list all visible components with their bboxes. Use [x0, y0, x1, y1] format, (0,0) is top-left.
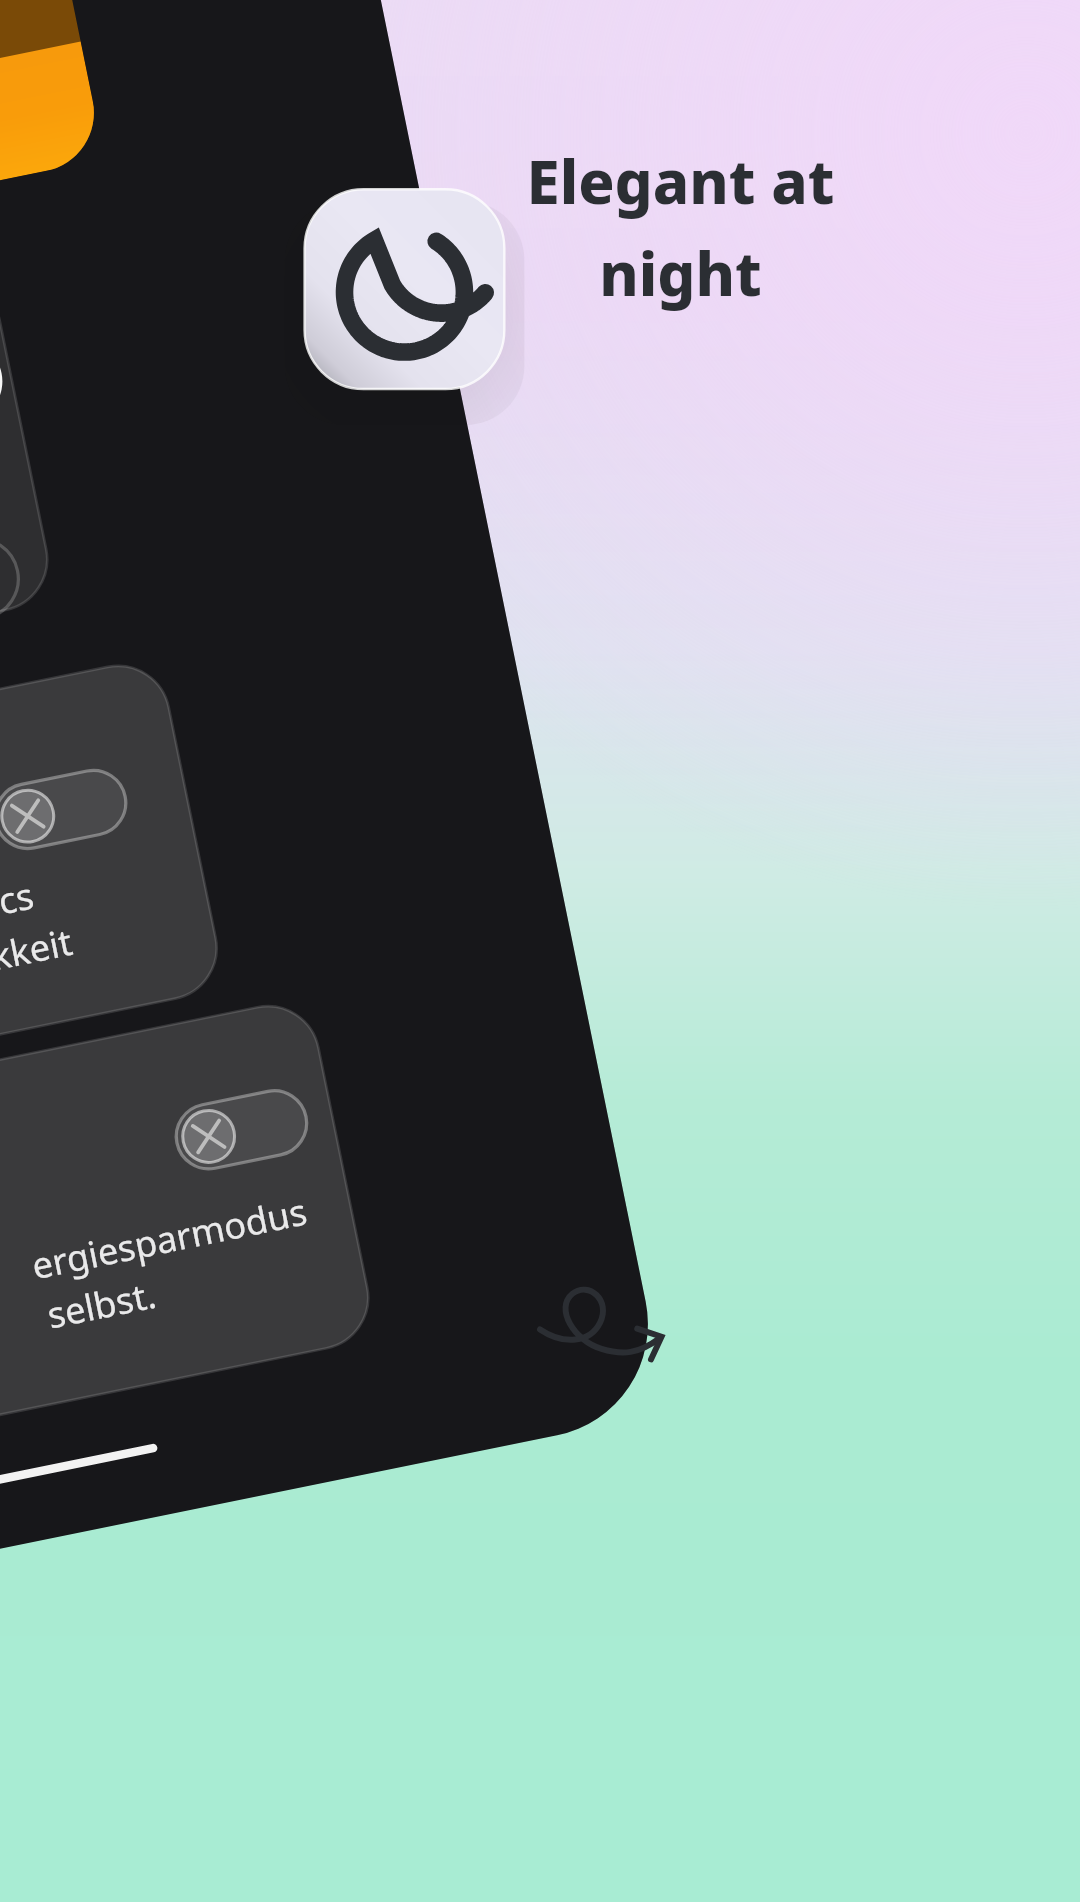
button[interactable]: Night mode	[0, 0, 1080, 1902]
